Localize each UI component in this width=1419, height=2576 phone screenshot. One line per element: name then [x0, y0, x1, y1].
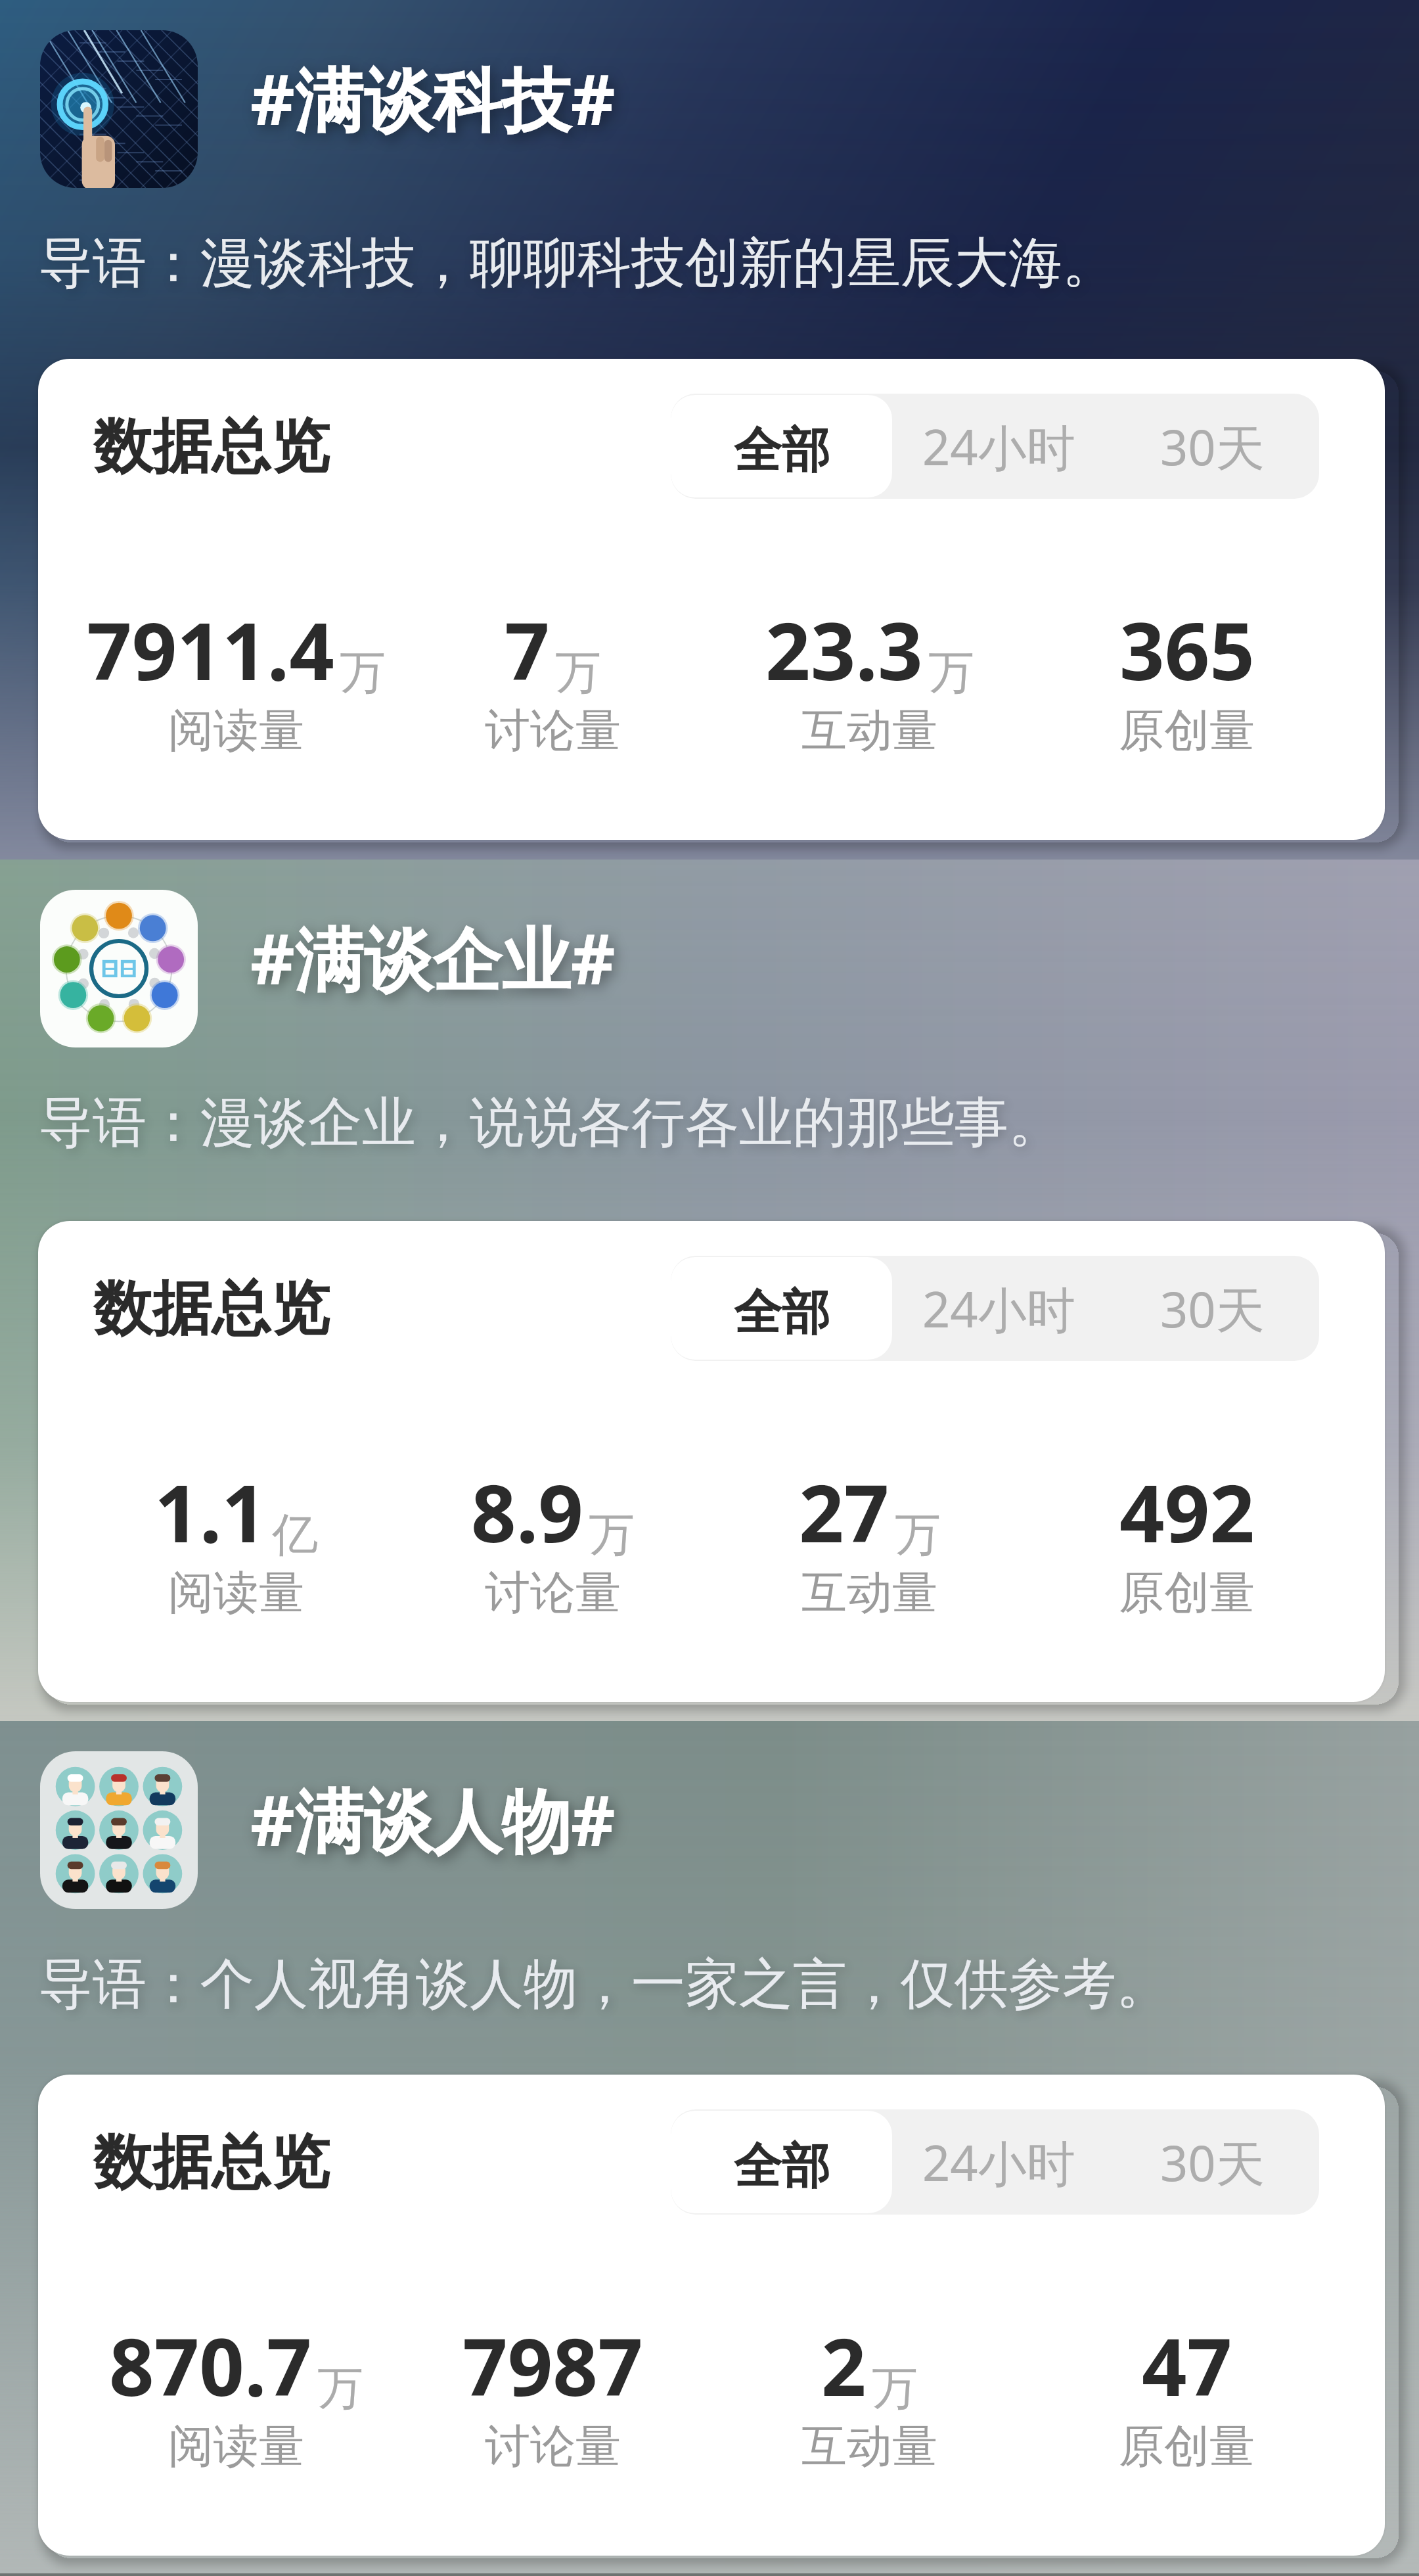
button[interactable]: 24小时	[892, 394, 1106, 499]
other: Topic icon	[40, 890, 198, 1047]
staticText: 互动量	[801, 2418, 937, 2475]
staticText: 24小时	[922, 413, 1075, 480]
staticText: 亿	[272, 1506, 318, 1564]
button[interactable]: 24小时	[892, 1256, 1106, 1361]
staticText: 27	[799, 1458, 890, 1565]
staticText: 30天	[1160, 413, 1265, 480]
staticText: 万	[928, 644, 974, 702]
button[interactable]: 30天	[1106, 1256, 1319, 1361]
button[interactable]: 30天	[1106, 394, 1319, 499]
other: Topic icon	[40, 1751, 198, 1909]
staticText: 阅读量	[168, 702, 304, 760]
staticText: 原创量	[1119, 2418, 1255, 2475]
button[interactable]: 全部	[671, 395, 892, 497]
staticText: 2	[821, 2312, 867, 2419]
staticText: 365	[1119, 596, 1255, 703]
staticText: 互动量	[801, 702, 937, 760]
staticText: #满谈科技#	[250, 51, 616, 145]
staticText: #满谈人物#	[250, 1772, 616, 1866]
button[interactable]: Topic icon	[40, 1751, 763, 1909]
staticText: 万	[317, 2360, 363, 2418]
staticText: 24小时	[922, 1276, 1075, 1342]
staticText: 万	[555, 644, 601, 702]
staticText: 数据总览	[93, 1272, 330, 1346]
staticText: 全部	[734, 2136, 830, 2197]
staticText: 导语：漫谈企业，说说各行各业的那些事。	[39, 1089, 1062, 1157]
staticText: 8.9	[471, 1458, 583, 1565]
staticText: 导语：个人视角谈人物，一家之言，仅供参考。	[39, 1950, 1170, 2018]
staticText: 导语：漫谈科技，聊聊科技创新的星辰大海。	[39, 229, 1116, 297]
staticText: 讨论量	[485, 1565, 621, 1622]
button[interactable]: 全部	[671, 1257, 892, 1360]
staticText: 7	[505, 596, 550, 703]
staticText: 万	[895, 1506, 941, 1564]
staticText: 30天	[1160, 1276, 1265, 1342]
staticText: 万	[589, 1506, 635, 1564]
button[interactable]: Topic icon	[40, 890, 763, 1047]
button[interactable]: 24小时	[892, 2109, 1106, 2215]
staticText: #满谈企业#	[250, 911, 616, 1005]
button[interactable]: 30天	[1106, 2109, 1319, 2215]
staticText: 7911.4	[87, 596, 334, 703]
staticText: 全部	[734, 1283, 830, 1343]
staticText: 23.3	[765, 596, 923, 703]
staticText: 讨论量	[485, 2418, 621, 2475]
staticText: 原创量	[1119, 702, 1255, 760]
staticText: 30天	[1160, 2129, 1265, 2196]
staticText: 47	[1142, 2312, 1232, 2419]
staticText: 万	[340, 644, 386, 702]
staticText: 1.1	[154, 1458, 267, 1565]
staticText: 阅读量	[168, 1565, 304, 1622]
button[interactable]: 全部	[671, 2111, 892, 2213]
staticText: 阅读量	[168, 2418, 304, 2475]
staticText: 全部	[734, 421, 830, 481]
staticText: 万	[872, 2360, 918, 2418]
staticText: 互动量	[801, 1565, 937, 1622]
staticText: 讨论量	[485, 702, 621, 760]
button[interactable]: Topic icon	[40, 30, 763, 188]
staticText: 数据总览	[93, 2125, 330, 2199]
staticText: 原创量	[1119, 1565, 1255, 1622]
staticText: 24小时	[922, 2129, 1075, 2196]
other: Topic icon	[40, 30, 198, 188]
staticText: 870.7	[109, 2312, 312, 2419]
staticText: 7987	[462, 2312, 643, 2419]
staticText: 492	[1119, 1458, 1255, 1565]
staticText: 数据总览	[93, 409, 330, 484]
